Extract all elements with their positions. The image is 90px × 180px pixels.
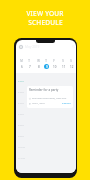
- staticText: S: [70, 59, 72, 63]
- staticText: 9: [46, 65, 48, 69]
- staticText: T: [28, 59, 30, 63]
- staticText: 555 Main 5785 Street, New York: [32, 97, 67, 100]
- staticText: Aug 1, 2019: [32, 102, 45, 105]
- button[interactable]: 7: [27, 64, 32, 69]
- staticText: 12: [70, 65, 74, 69]
- staticText: VIEW YOUR: [26, 9, 64, 18]
- button[interactable]: 8: [36, 64, 41, 69]
- staticText: 9 PM: [18, 134, 24, 137]
- staticText: S: [62, 59, 64, 63]
- staticText: 7 PM: [18, 112, 24, 115]
- button[interactable]: 6: [19, 64, 24, 69]
- staticText: 6 PM: [18, 101, 24, 104]
- staticText: 7: [29, 65, 31, 69]
- staticText: 10 PM: [18, 145, 25, 148]
- staticText: 11 PM: [18, 156, 25, 159]
- button[interactable]: Search: [71, 44, 76, 49]
- staticText: W: [37, 59, 40, 63]
- staticText: 10: [53, 65, 57, 69]
- staticText: F: [53, 59, 55, 63]
- staticText: May 2019: [25, 45, 40, 49]
- staticText: 8: [38, 65, 40, 69]
- button[interactable]: 11: [61, 64, 66, 69]
- button[interactable]: 9: [44, 64, 49, 69]
- staticText: 11: [62, 65, 66, 69]
- staticText: 5 PM: [18, 90, 24, 93]
- button[interactable]: Reminder for a party: [27, 86, 73, 108]
- button[interactable]: Menu: [18, 44, 23, 49]
- button[interactable]: 10: [52, 64, 57, 69]
- staticText: T: [45, 59, 47, 63]
- staticText: M: [20, 59, 23, 63]
- staticText: 4 PM: [18, 79, 24, 82]
- staticText: SCHEDULE: [28, 18, 63, 27]
- staticText: Reminder for a party: [29, 88, 59, 92]
- staticText: 4:00 PM: [62, 102, 71, 105]
- staticText: 6: [21, 65, 23, 69]
- button[interactable]: 12: [69, 64, 74, 69]
- staticText: 8 PM: [18, 123, 24, 126]
